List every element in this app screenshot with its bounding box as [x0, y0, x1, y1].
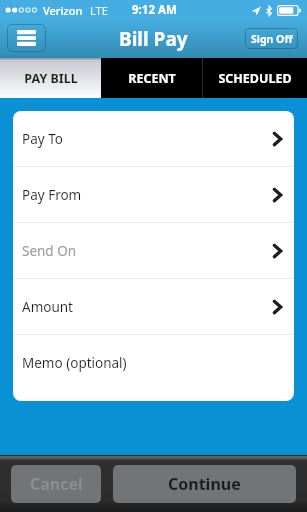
- button[interactable]: Pay From: [13, 167, 294, 222]
- button[interactable]: Pay To: [13, 111, 294, 166]
- staticText: SCHEDULED: [218, 70, 292, 87]
- staticText: Verizon: [43, 3, 83, 18]
- staticText: Pay To: [22, 130, 63, 148]
- button[interactable]: Amount: [13, 279, 294, 334]
- staticText: Memo (optional): [22, 354, 127, 372]
- button[interactable]: PAY BILL: [0, 58, 101, 98]
- button[interactable]: Menu: [7, 24, 46, 52]
- button[interactable]: Continue: [113, 465, 296, 503]
- staticText: LTE: [90, 3, 108, 18]
- staticText: Sign Off: [251, 32, 293, 46]
- staticText: Send On: [22, 242, 77, 260]
- button[interactable]: Sign Off: [245, 28, 298, 49]
- button[interactable]: Memo (optional): [13, 335, 294, 401]
- button[interactable]: Send On: [13, 223, 294, 278]
- button[interactable]: Cancel: [11, 465, 101, 503]
- staticText: PAY BILL: [24, 70, 78, 87]
- staticText: Pay From: [22, 186, 82, 204]
- staticText: Bill Pay: [119, 26, 188, 52]
- staticText: Continue: [168, 473, 241, 495]
- button[interactable]: SCHEDULED: [203, 58, 307, 98]
- staticText: Cancel: [30, 473, 83, 495]
- staticText: 9:12 AM: [132, 2, 177, 18]
- button[interactable]: RECENT: [101, 58, 202, 98]
- staticText: RECENT: [128, 70, 176, 87]
- staticText: Amount: [22, 298, 73, 316]
